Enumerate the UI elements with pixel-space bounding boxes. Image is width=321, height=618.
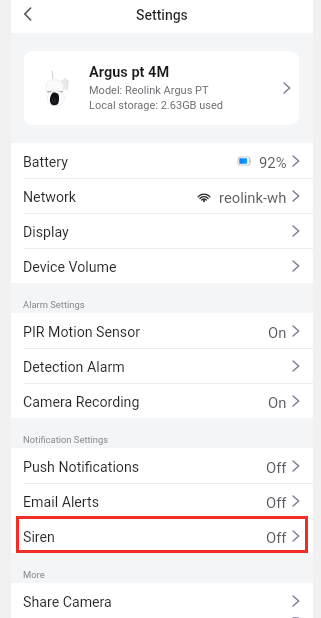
staticText: Network bbox=[23, 189, 77, 206]
button[interactable]: Push Notifications bbox=[11, 448, 313, 483]
staticText: On bbox=[268, 324, 287, 341]
staticText: On bbox=[268, 394, 287, 411]
staticText: Off bbox=[266, 529, 287, 546]
staticText: Share Camera bbox=[23, 594, 112, 611]
staticText: reolink-wh bbox=[219, 189, 287, 206]
staticText: Model: Reolink Argus PT bbox=[89, 84, 209, 97]
staticText: Display bbox=[23, 224, 69, 241]
staticText: Detection Alarm bbox=[23, 359, 125, 376]
button[interactable]: Camera Recording bbox=[11, 383, 313, 418]
staticText: Settings bbox=[136, 7, 188, 23]
staticText: Alarm Settings bbox=[23, 299, 85, 310]
staticText: Email Alerts bbox=[23, 494, 99, 511]
staticText: More bbox=[23, 569, 45, 580]
staticText: PIR Motion Sensor bbox=[23, 324, 141, 341]
button[interactable]: Battery bbox=[11, 143, 313, 178]
button[interactable]: Detection Alarm bbox=[11, 348, 313, 383]
staticText: Device Volume bbox=[23, 259, 117, 276]
staticText: Camera Recording bbox=[23, 394, 140, 411]
button[interactable]: Network bbox=[11, 178, 313, 213]
staticText: Push Notifications bbox=[23, 459, 140, 476]
button[interactable]: Argus pt 4M bbox=[24, 51, 299, 125]
button[interactable]: Email Alerts bbox=[11, 483, 313, 518]
button[interactable]: PIR Motion Sensor bbox=[11, 313, 313, 348]
staticText: Battery bbox=[23, 154, 69, 171]
staticText: Off bbox=[266, 459, 287, 476]
button[interactable]: Back bbox=[12, 0, 42, 29]
button[interactable]: Siren bbox=[11, 518, 313, 553]
staticText: Notification Settings bbox=[23, 434, 109, 445]
staticText: 92% bbox=[259, 154, 287, 171]
button[interactable]: Share Camera bbox=[11, 583, 313, 618]
button[interactable]: Device Volume bbox=[11, 248, 313, 283]
staticText: Off bbox=[266, 494, 287, 511]
staticText: Siren bbox=[23, 529, 55, 546]
staticText: Argus pt 4M bbox=[89, 64, 170, 81]
button[interactable]: Display bbox=[11, 213, 313, 248]
staticText: Local storage: 2.63GB used bbox=[89, 99, 223, 112]
